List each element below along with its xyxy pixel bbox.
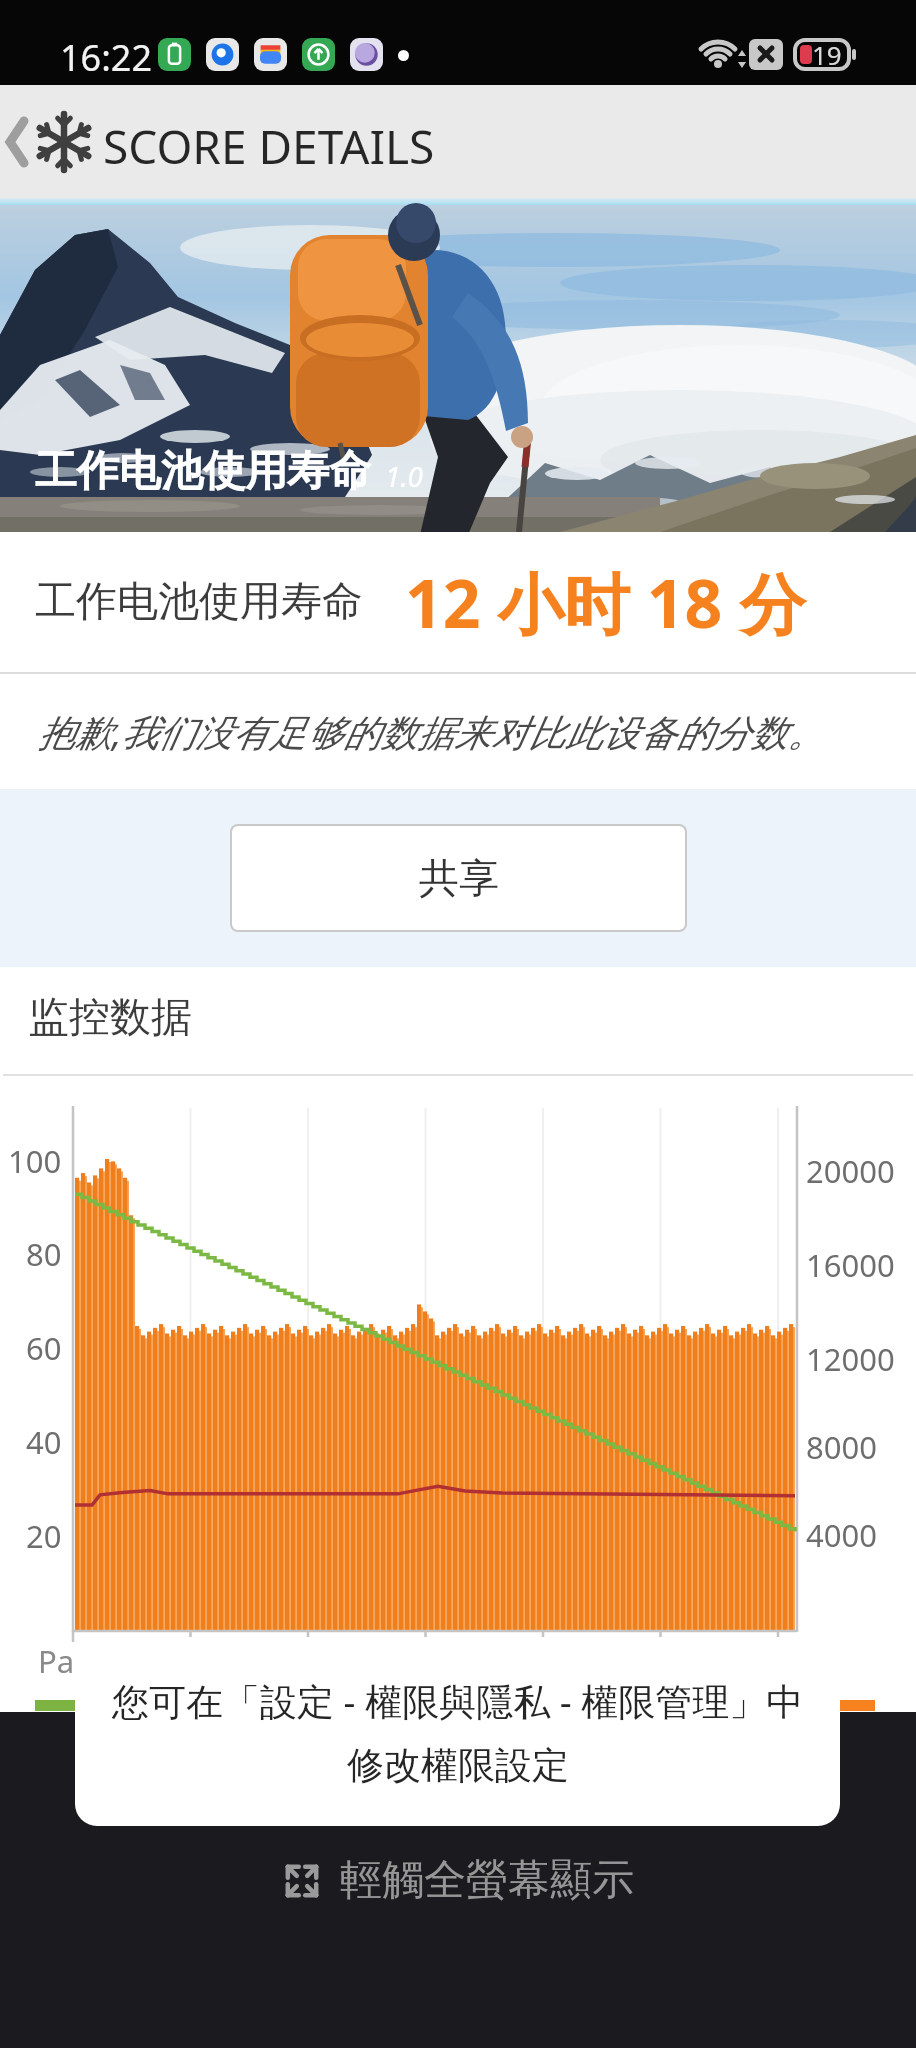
staticText: SCORE DETAILS — [103, 115, 435, 178]
button[interactable] — [0, 85, 34, 198]
staticText: Passed — [38, 1640, 141, 1682]
staticText: 12000 — [806, 1338, 895, 1380]
staticText: 20000 — [806, 1150, 895, 1192]
staticText: 工作电池使用寿命 — [35, 445, 371, 498]
staticText: 80 — [26, 1233, 62, 1269]
staticText: 60 — [26, 1327, 62, 1363]
staticText: 1.0 — [385, 457, 424, 495]
staticText: 修改權限設定 — [347, 1742, 569, 1789]
staticText: 輕觸全螢幕顯示 — [340, 1854, 634, 1907]
staticText: 16:22 — [60, 33, 153, 82]
staticText: 共享 — [419, 853, 499, 903]
staticText: 100 — [8, 1140, 62, 1176]
staticText: 12 小时 18 分 — [405, 557, 806, 647]
staticText: 抱歉,我们没有足够的数据来对比此设备的分数。 — [38, 706, 825, 757]
staticText: 16000 — [806, 1244, 895, 1286]
staticText: 20 — [26, 1515, 62, 1551]
staticText: 4000 — [806, 1514, 877, 1556]
staticText: 您可在「設定 - 權限與隱私 - 權限管理」中 — [112, 1675, 804, 1726]
staticText: 19 — [812, 37, 842, 72]
staticText: 工作电池使用寿命 — [35, 576, 363, 628]
button[interactable]: 輕觸全螢幕顯示 — [282, 1854, 634, 1907]
staticText: 8000 — [806, 1426, 877, 1468]
staticText: 40 — [26, 1421, 62, 1457]
button[interactable]: 共享 — [232, 826, 685, 930]
staticText: 监控数据 — [28, 992, 192, 1044]
